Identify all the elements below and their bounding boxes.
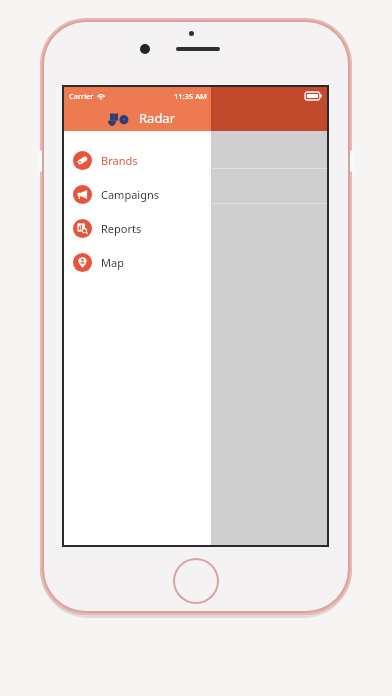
button[interactable]: Home [173, 558, 219, 604]
button[interactable]: Campaigns [64, 177, 211, 211]
staticText: Map [101, 255, 124, 270]
button[interactable]: Map [64, 245, 211, 279]
button[interactable]: Brands [64, 143, 211, 177]
staticText: 11:35 AM [174, 91, 207, 101]
staticText: Carrier [69, 91, 94, 101]
staticText: Radar [139, 109, 176, 127]
staticText: Campaigns [101, 187, 160, 202]
button[interactable]: Reports [64, 211, 211, 245]
staticText: Brands [101, 153, 138, 168]
staticText: Reports [101, 221, 142, 236]
